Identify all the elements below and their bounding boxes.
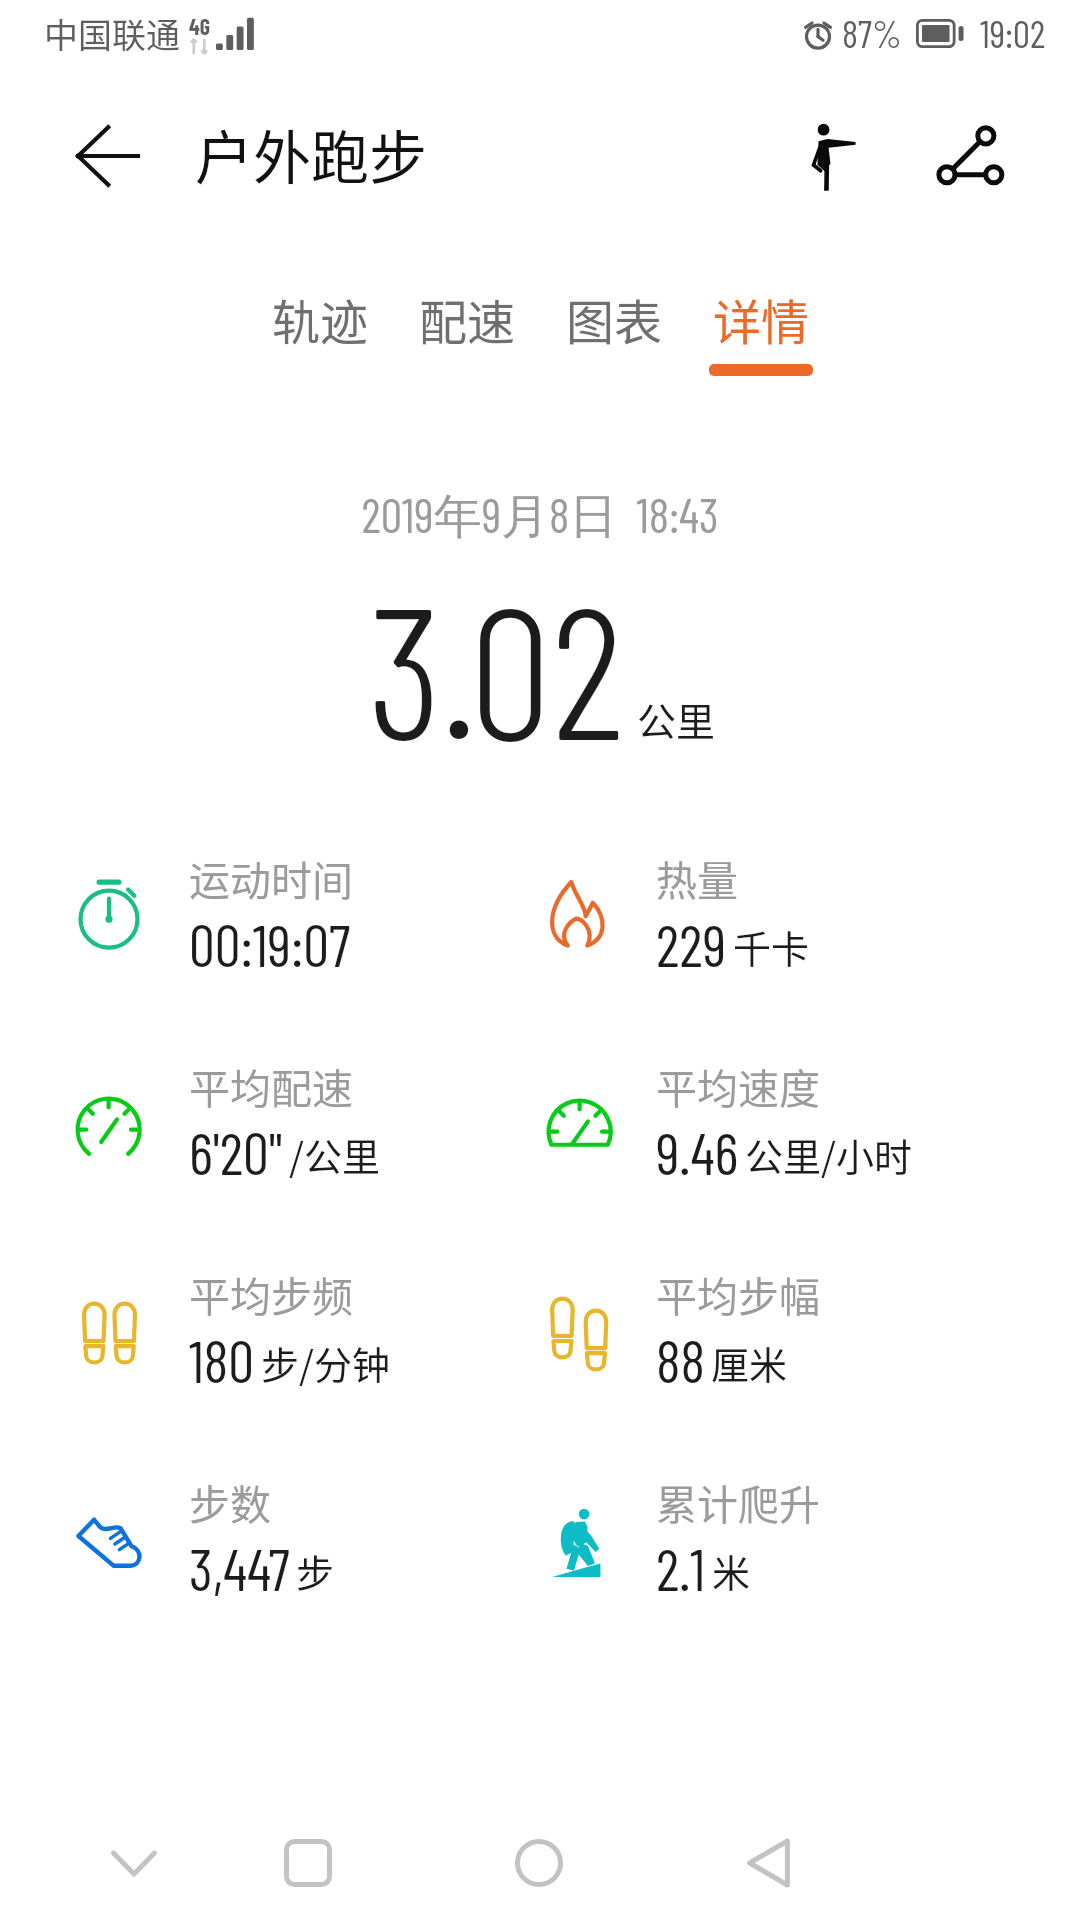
staticText: 轨迹: [272, 284, 369, 354]
staticText: 累计爬升: [656, 1472, 820, 1531]
staticText: 88: [656, 1325, 705, 1395]
button[interactable]: Home: [464, 1806, 614, 1920]
button[interactable]: Hide keyboard: [59, 1806, 209, 1920]
button[interactable]: 详情: [687, 264, 835, 376]
staticText: 户外跑步: [195, 112, 428, 196]
button[interactable]: 平均步幅: [507, 1256, 957, 1396]
button[interactable]: 步数: [40, 1464, 490, 1604]
staticText: 2.1: [656, 1533, 706, 1603]
staticText: 步数: [189, 1472, 271, 1531]
staticText: 229: [656, 909, 727, 979]
button[interactable]: Activity type: [774, 96, 894, 216]
button[interactable]: 轨迹: [246, 264, 394, 376]
button[interactable]: 配速: [393, 264, 541, 376]
staticText: 公里/小时: [745, 1127, 912, 1182]
button[interactable]: 累计爬升: [507, 1464, 957, 1604]
staticText: 配速: [419, 284, 516, 354]
staticText: 6'20": [189, 1117, 283, 1187]
staticText: 87%: [842, 10, 902, 56]
staticText: 中国联通: [44, 9, 180, 58]
button[interactable]: 热量: [507, 840, 957, 980]
button[interactable]: 运动时间: [40, 840, 490, 980]
staticText: 平均步频: [189, 1264, 353, 1323]
staticText: 热量: [656, 848, 738, 907]
button[interactable]: Back: [693, 1806, 843, 1920]
staticText: 公里: [637, 691, 716, 747]
button[interactable]: Recents: [233, 1806, 383, 1920]
staticText: 步/分钟: [261, 1335, 390, 1390]
staticText: 3,447: [189, 1533, 290, 1603]
button[interactable]: 平均速度: [507, 1048, 957, 1188]
staticText: 19:02: [980, 10, 1046, 56]
staticText: 厘米: [711, 1335, 788, 1390]
button[interactable]: 图表: [540, 264, 688, 376]
staticText: 2019年9月8日 18:43: [0, 485, 1080, 547]
staticText: 4G: [189, 13, 210, 39]
staticText: 步: [296, 1543, 335, 1598]
button[interactable]: 平均配速: [40, 1048, 490, 1188]
staticText: 千卡: [733, 919, 810, 974]
staticText: 详情: [713, 284, 810, 354]
staticText: 平均步幅: [656, 1264, 820, 1323]
button[interactable]: Back: [47, 96, 167, 216]
staticText: 平均配速: [189, 1056, 353, 1115]
staticText: /公里: [289, 1127, 380, 1182]
staticText: 00:19:07: [189, 909, 351, 979]
staticText: 图表: [566, 284, 663, 354]
staticText: 平均速度: [656, 1056, 820, 1115]
staticText: 运动时间: [189, 848, 353, 907]
staticText: 3.02: [368, 555, 624, 777]
staticText: 180: [189, 1325, 255, 1395]
staticText: 米: [712, 1543, 751, 1598]
staticText: 9.46: [656, 1117, 739, 1187]
button[interactable]: 平均步频: [40, 1256, 490, 1396]
button[interactable]: Share: [910, 96, 1030, 216]
